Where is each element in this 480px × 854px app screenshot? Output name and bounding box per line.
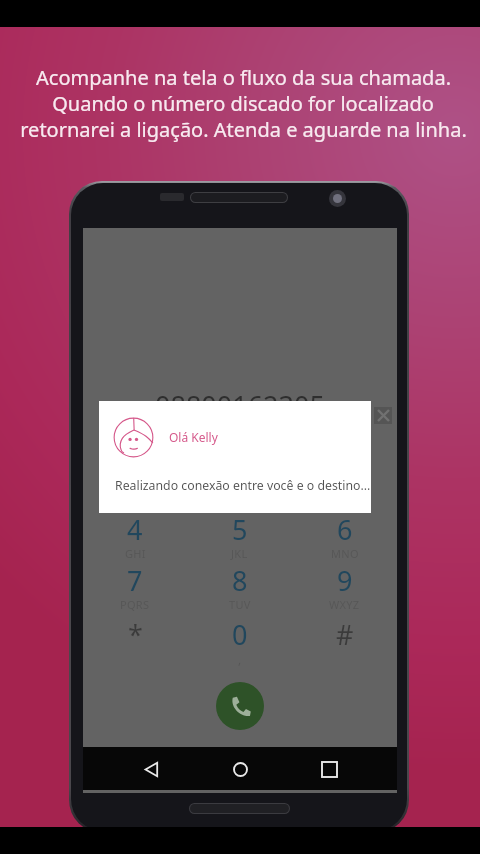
button[interactable]: 2 bbox=[187, 409, 292, 457]
button[interactable]: * bbox=[83, 616, 187, 664]
button[interactable]: 4 bbox=[83, 460, 187, 508]
button[interactable]: Close bbox=[374, 407, 392, 424]
button[interactable]: 6 bbox=[292, 511, 397, 559]
staticText: * bbox=[128, 616, 143, 653]
staticText: 5 bbox=[232, 511, 248, 548]
staticText: # bbox=[336, 616, 354, 653]
staticText: 7 bbox=[127, 562, 143, 599]
staticText: TUV bbox=[229, 597, 251, 612]
button[interactable]: 8 bbox=[187, 562, 292, 610]
staticText: 0 bbox=[232, 616, 248, 653]
staticText: 9 bbox=[337, 562, 353, 599]
staticText: 5 bbox=[232, 460, 248, 497]
button[interactable]: 5 bbox=[187, 511, 292, 559]
staticText: JKL bbox=[231, 546, 248, 561]
staticText: PQRS bbox=[120, 597, 150, 612]
staticText: Acompanhe na tela o fluxo da sua chamada… bbox=[36, 64, 451, 90]
staticText: 1 bbox=[127, 409, 143, 446]
staticText: GHI bbox=[125, 546, 146, 561]
staticText: 6 bbox=[337, 460, 353, 497]
button[interactable]: 0 bbox=[187, 616, 292, 664]
button[interactable]: 4 bbox=[83, 511, 187, 559]
button[interactable]: 9 bbox=[292, 562, 397, 610]
staticText: 4 bbox=[127, 511, 143, 548]
staticText: 8 bbox=[232, 562, 248, 599]
staticText: 4 bbox=[127, 460, 143, 497]
button[interactable]: Recents bbox=[308, 748, 350, 790]
staticText: 08800162305 bbox=[155, 387, 325, 424]
button[interactable]: 5 bbox=[187, 460, 292, 508]
button[interactable]: 7 bbox=[83, 562, 187, 610]
staticText: Quando o número discado for localizado bbox=[52, 90, 434, 116]
button[interactable]: 3 bbox=[292, 409, 397, 457]
button[interactable]: Home bbox=[219, 748, 261, 790]
button[interactable]: Back bbox=[130, 748, 172, 790]
button[interactable]: # bbox=[292, 616, 397, 664]
staticText: 6 bbox=[337, 511, 353, 548]
staticText: WXYZ bbox=[329, 597, 360, 612]
staticText: MNO bbox=[331, 546, 359, 561]
button[interactable]: Call bbox=[216, 682, 264, 730]
button[interactable]: 1 bbox=[83, 409, 187, 457]
staticText: retornarei a ligação. Atenda e aguarde n… bbox=[20, 116, 467, 142]
staticText: Olá Kelly bbox=[169, 429, 218, 445]
button[interactable]: 6 bbox=[292, 460, 397, 508]
staticText: Realizando conexão entre você e o destin… bbox=[115, 477, 371, 494]
